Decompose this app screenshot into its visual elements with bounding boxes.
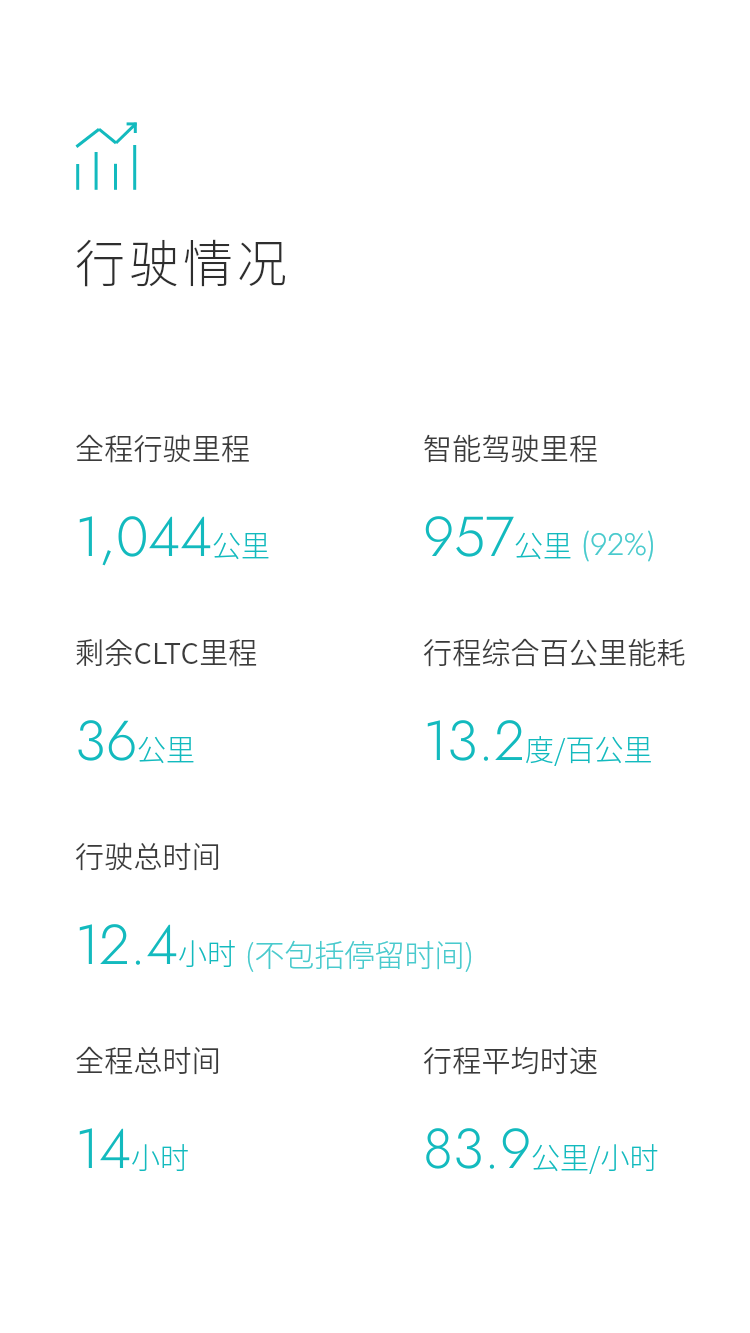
staticText: 小时 (131, 1135, 190, 1177)
button[interactable]: 957 (423, 515, 648, 577)
other: (92%) (581, 532, 656, 566)
button[interactable]: 剩余CLTC里程 (75, 630, 258, 672)
staticText: 行程平均时速 (423, 1038, 599, 1080)
other: 1,044 (75, 515, 212, 577)
staticText: 公里 (212, 523, 271, 565)
button[interactable]: 13.2 (423, 719, 653, 781)
staticText: 小时 (178, 931, 237, 973)
button[interactable]: 83.9 (423, 1127, 659, 1189)
other: 14 (75, 1127, 131, 1189)
other: 13.2 (423, 719, 525, 781)
staticText: 剩余CLTC里程 (75, 630, 258, 672)
button[interactable]: 行驶总时间 (75, 834, 222, 876)
button[interactable]: 行程综合百公里能耗 (423, 630, 686, 672)
staticText: 行驶情况 (75, 224, 291, 296)
button[interactable]: 全程行驶里程 (75, 426, 251, 468)
button[interactable]: Driving statistics (71, 112, 146, 195)
staticText: (不包括停留时间) (245, 931, 474, 974)
button[interactable]: 1,044 (75, 515, 271, 577)
staticText: 智能驾驶里程 (423, 426, 599, 468)
staticText: 全程行驶里程 (75, 426, 251, 468)
staticText: 全程总时间 (75, 1038, 222, 1080)
button[interactable]: 行驶情况 (75, 224, 291, 296)
button[interactable]: 36 (75, 719, 196, 781)
button[interactable]: 全程总时间 (75, 1038, 222, 1080)
other: 83.9 (423, 1127, 531, 1189)
other: 36 (75, 719, 137, 781)
staticText: 公里 (514, 523, 573, 565)
button[interactable]: 行程平均时速 (423, 1038, 599, 1080)
staticText: 度/百公里 (525, 727, 653, 769)
button[interactable]: 12.4 (75, 923, 466, 985)
staticText: 公里/小时 (531, 1135, 659, 1177)
other: 957 (423, 515, 514, 577)
staticText: 行驶总时间 (75, 834, 222, 876)
other: 12.4 (75, 923, 178, 985)
button[interactable]: 智能驾驶里程 (423, 426, 599, 468)
staticText: 公里 (137, 727, 196, 769)
staticText: 行程综合百公里能耗 (423, 630, 686, 672)
button[interactable]: 14 (75, 1127, 190, 1189)
